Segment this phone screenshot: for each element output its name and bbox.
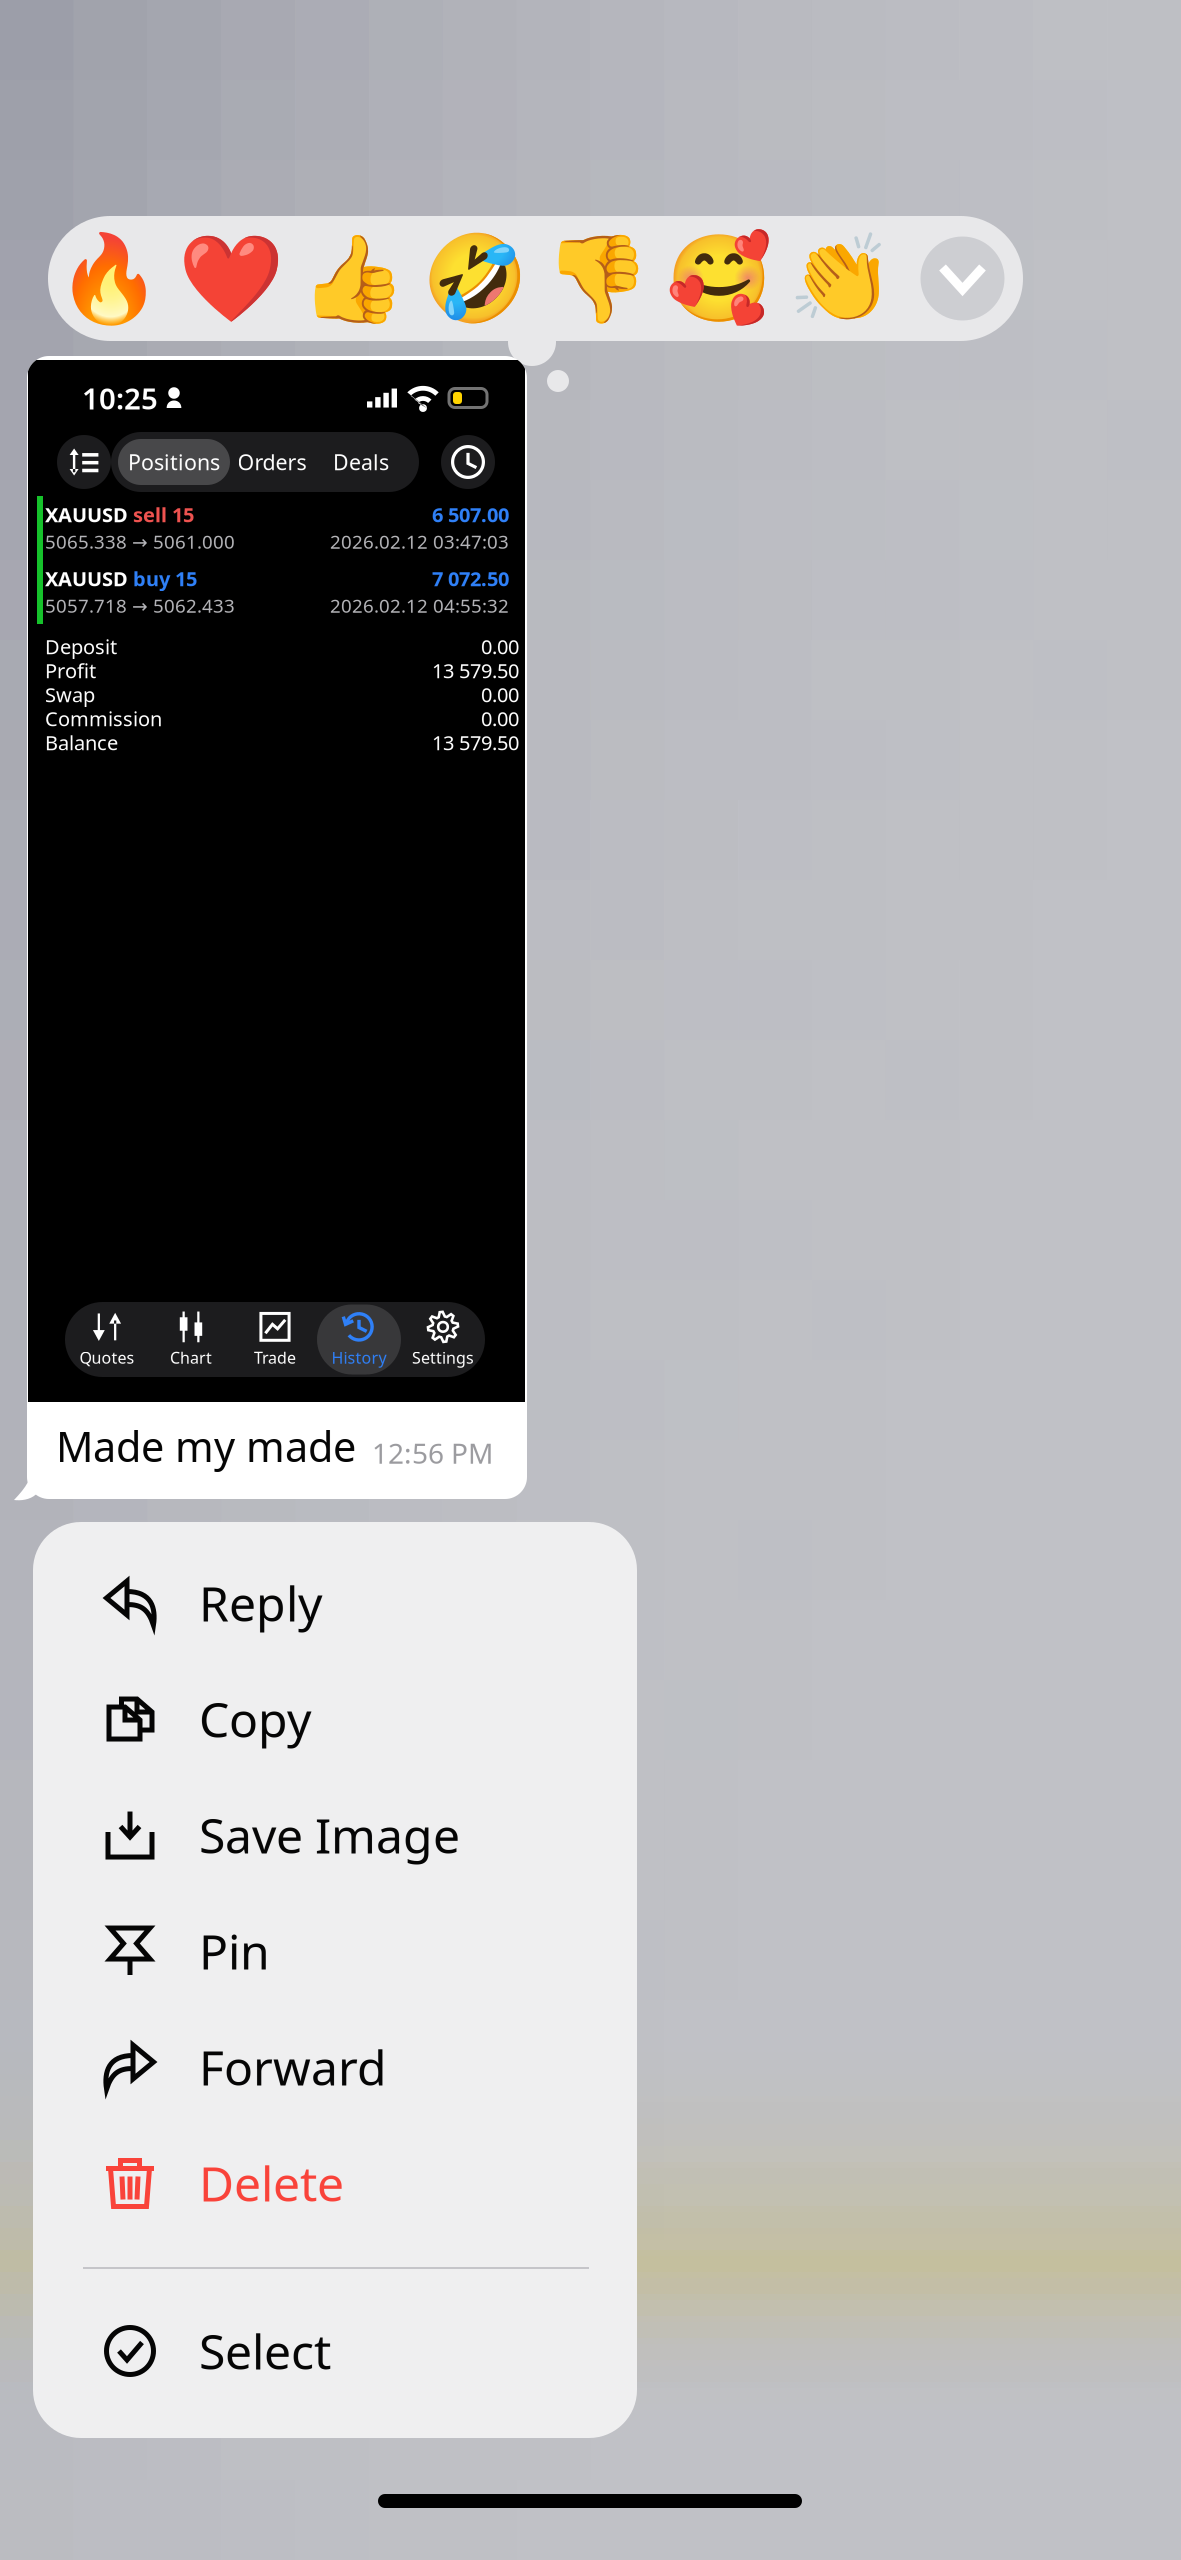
button[interactable]: History <box>317 1304 401 1374</box>
button[interactable]: 👎 <box>536 216 658 341</box>
staticText: Copy <box>199 1687 311 1751</box>
button[interactable]: 👍 <box>292 216 414 341</box>
button[interactable]: Forward <box>33 2009 637 2125</box>
staticText: XAUUSD <box>45 565 128 592</box>
staticText: sell 15 <box>128 501 194 528</box>
button[interactable]: 🔥 <box>48 216 170 341</box>
staticText: 13 579.50 <box>432 657 519 684</box>
button[interactable]: Chart <box>149 1304 233 1374</box>
staticText: 🔥 <box>56 230 162 327</box>
staticText: Reply <box>199 1571 322 1635</box>
staticText: Swap <box>45 681 95 708</box>
staticText: Trade <box>254 1347 296 1368</box>
button[interactable]: Settings <box>401 1304 485 1374</box>
staticText: Made my made <box>56 1419 356 1473</box>
staticText: 🤣 <box>422 230 528 327</box>
button[interactable]: Positions <box>118 439 230 485</box>
staticText: ❤️ <box>178 230 284 327</box>
staticText: 5057.718 → 5062.433 <box>45 593 235 618</box>
staticText: Commission <box>45 705 162 732</box>
button[interactable]: Orders <box>230 439 314 485</box>
staticText: 0.00 <box>481 633 519 660</box>
staticText: 👎 <box>544 230 650 327</box>
staticText: 6 507.00 <box>432 501 509 528</box>
staticText: XAUUSD <box>45 501 128 528</box>
staticText: 10:25 <box>82 378 158 417</box>
button[interactable]: ❤️ <box>170 216 292 341</box>
staticText: 2026.02.12 03:47:03 <box>330 529 509 554</box>
staticText: 👏 <box>788 230 894 327</box>
staticText: Chart <box>170 1347 212 1368</box>
staticText: Forward <box>199 2035 387 2099</box>
staticText: Positions <box>128 448 220 476</box>
button[interactable]: Deals <box>319 439 403 485</box>
button[interactable]: Sort <box>57 435 111 489</box>
staticText: Select <box>199 2319 331 2383</box>
staticText: Settings <box>412 1347 474 1368</box>
staticText: 🥰 <box>666 230 772 327</box>
staticText: Deposit <box>45 633 117 660</box>
staticText: 0.00 <box>481 705 519 732</box>
button[interactable]: 👏 <box>780 216 902 341</box>
staticText: Deals <box>333 448 389 476</box>
button[interactable]: 🤣 <box>414 216 536 341</box>
staticText: 5065.338 → 5061.000 <box>45 529 235 554</box>
button[interactable]: Select <box>33 2293 637 2409</box>
button[interactable]: Copy <box>33 1661 637 1777</box>
button[interactable]: Trade <box>233 1304 317 1374</box>
staticText: Profit <box>45 657 96 684</box>
staticText: 12:56 PM <box>372 1434 493 1471</box>
button[interactable]: Delete <box>33 2125 637 2241</box>
staticText: 0.00 <box>481 681 519 708</box>
staticText: 13 579.50 <box>432 729 519 756</box>
button[interactable]: Reply <box>33 1545 637 1661</box>
staticText: 👍 <box>300 230 406 327</box>
button[interactable]: Pin <box>33 1893 637 2009</box>
staticText: History <box>331 1347 386 1368</box>
button[interactable]: History <box>441 435 495 489</box>
staticText: Quotes <box>79 1347 134 1368</box>
staticText: Pin <box>199 1919 270 1983</box>
staticText: Delete <box>199 2151 344 2215</box>
staticText: 2026.02.12 04:55:32 <box>330 593 509 618</box>
button[interactable]: Save Image <box>33 1777 637 1893</box>
button[interactable]: 🥰 <box>658 216 780 341</box>
staticText: Balance <box>45 729 118 756</box>
staticText: buy 15 <box>128 565 197 592</box>
button[interactable]: XAUUSD <box>45 566 509 618</box>
staticText: Save Image <box>199 1803 460 1867</box>
button[interactable]: XAUUSD <box>45 502 509 554</box>
staticText: 7 072.50 <box>432 565 509 592</box>
button[interactable]: Quotes <box>65 1304 149 1374</box>
button[interactable]: More reactions <box>902 216 1023 341</box>
staticText: Orders <box>237 448 306 476</box>
